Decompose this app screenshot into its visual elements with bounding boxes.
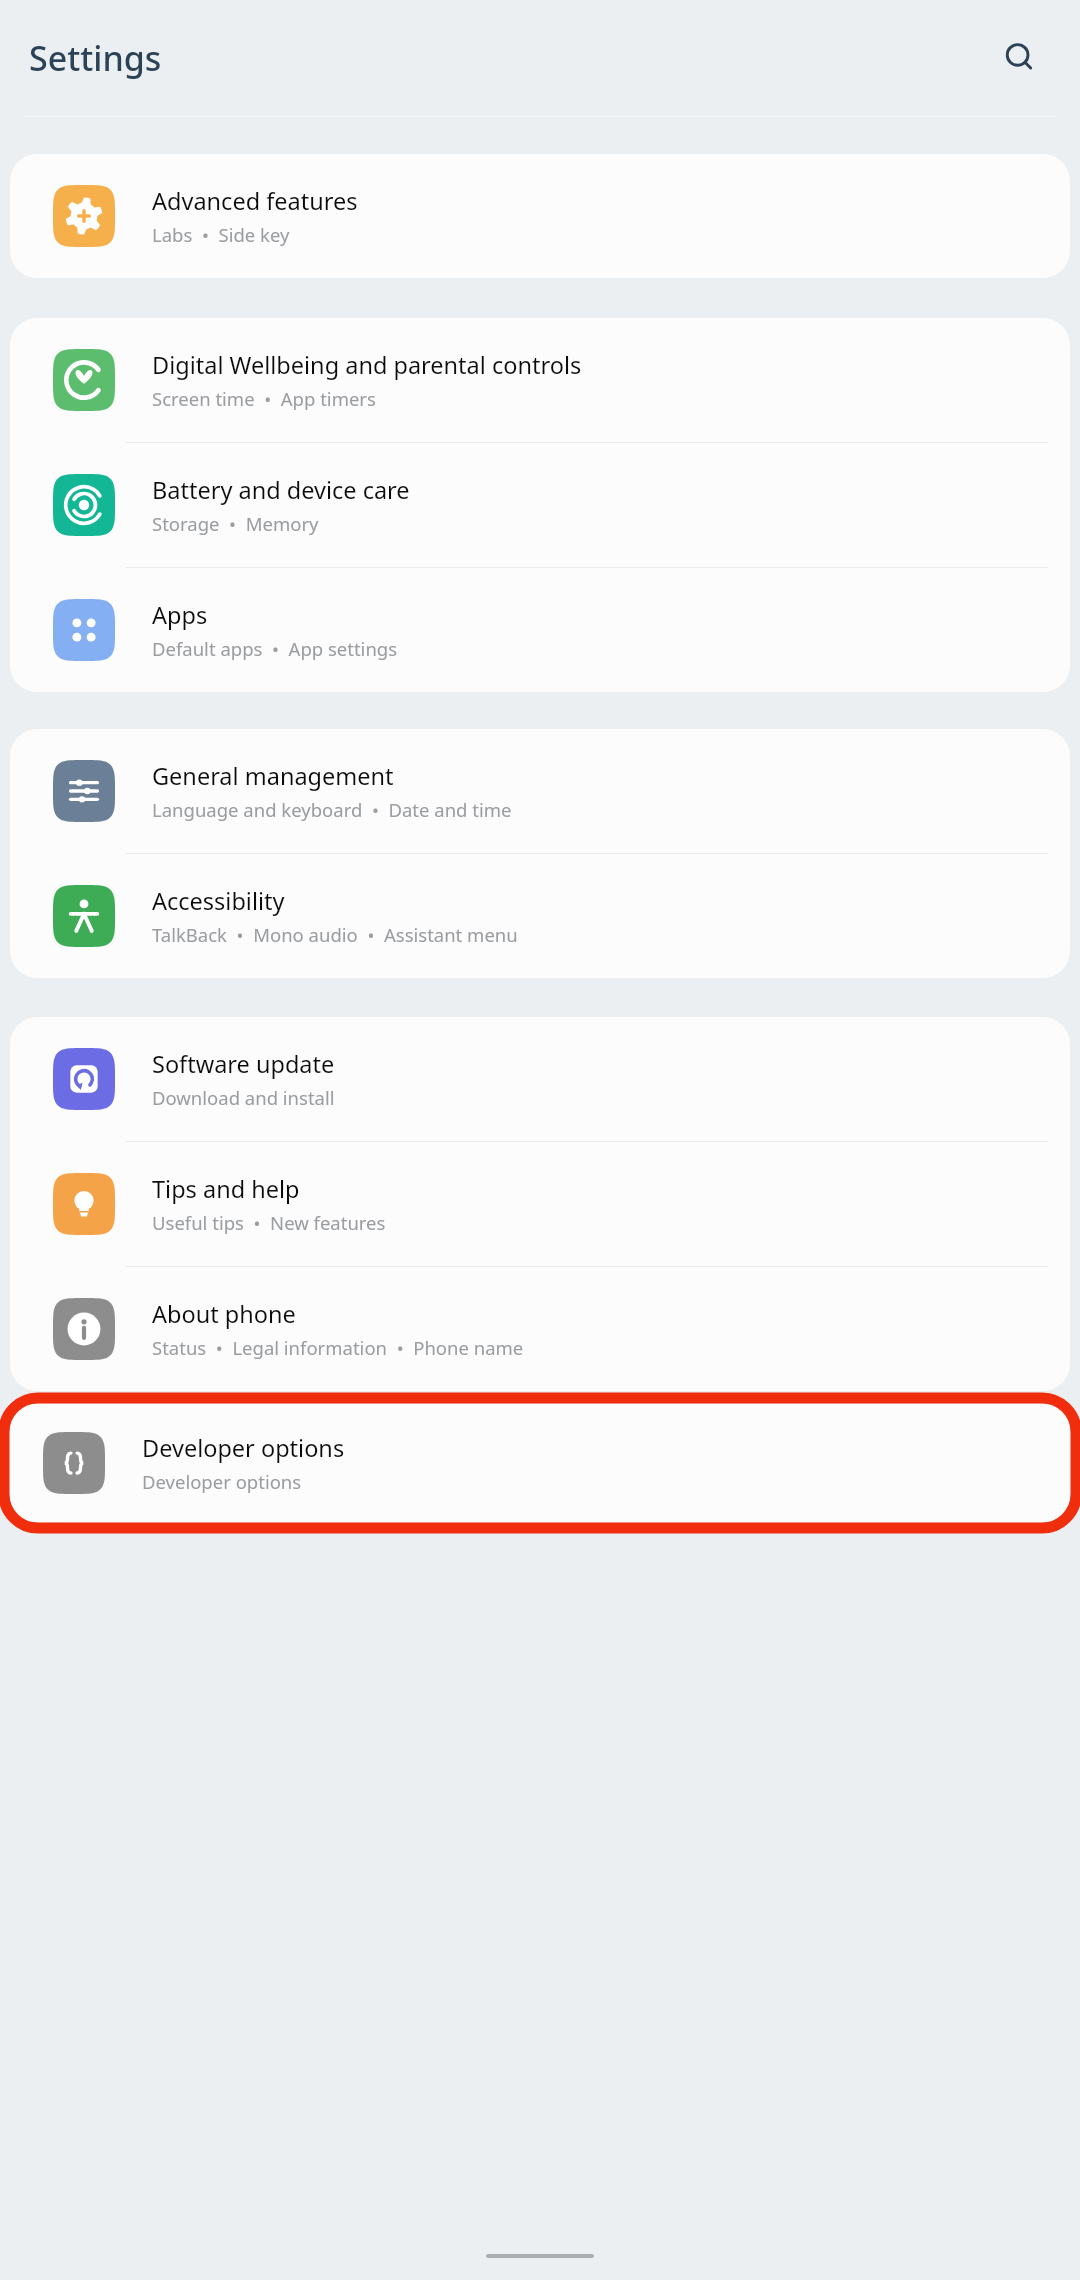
button[interactable]: Developer options [10,1404,1070,1522]
staticText: Settings [29,35,162,81]
staticText: Labs • Side key [152,222,290,247]
button[interactable]: Search settings [996,34,1044,82]
staticText: Screen time • App timers [152,386,376,411]
staticText: Status • Legal information • Phone name [152,1335,524,1360]
staticText: Storage • Memory [152,511,319,536]
staticText: Apps [152,599,208,631]
button[interactable]: Advanced features [10,154,1070,278]
staticText: Developer options [142,1432,345,1464]
staticText: Download and install [152,1085,335,1110]
button[interactable]: Tips and help [10,1142,1070,1267]
staticText: Default apps • App settings [152,636,398,661]
staticText: Accessibility [152,885,285,917]
button[interactable]: About phone [10,1267,1070,1391]
staticText: TalkBack • Mono audio • Assistant menu [152,922,518,947]
staticText: General management [152,760,394,792]
staticText: Software update [152,1048,335,1080]
staticText: Battery and device care [152,474,410,506]
button[interactable]: General management [10,729,1070,854]
button[interactable]: Battery and device care [10,443,1070,568]
staticText: Language and keyboard • Date and time [152,797,512,822]
staticText: Useful tips • New features [152,1210,386,1235]
button[interactable]: Apps [10,568,1070,692]
staticText: About phone [152,1298,296,1330]
button[interactable]: Accessibility [10,854,1070,978]
staticText: Digital Wellbeing and parental controls [152,349,582,381]
staticText: Developer options [142,1469,302,1494]
button[interactable]: Digital Wellbeing and parental controls [10,318,1070,443]
staticText: Tips and help [152,1173,300,1205]
button[interactable]: Software update [10,1017,1070,1142]
staticText: Advanced features [152,185,358,217]
